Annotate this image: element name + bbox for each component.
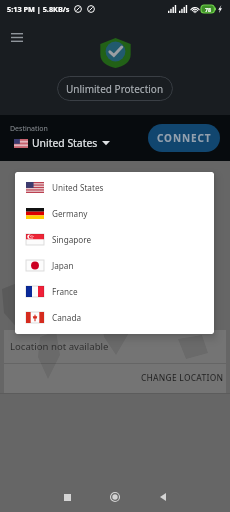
staticText: Japan [52, 260, 74, 271]
staticText: Germany [52, 208, 88, 219]
button[interactable]: CONNECT [148, 124, 220, 152]
staticText: Destination [10, 124, 48, 134]
button[interactable]: Singapore [15, 226, 214, 252]
staticText: CHANGE LOCATION [141, 372, 224, 383]
button[interactable]: Japan [15, 252, 214, 278]
staticText: United States [52, 182, 104, 193]
staticText: Singapore [52, 234, 92, 245]
staticText: 78 [205, 6, 211, 13]
button[interactable]: Home [93, 478, 137, 512]
button[interactable]: Back [141, 478, 185, 512]
staticText: France [52, 286, 78, 297]
staticText: Canada [52, 312, 82, 323]
button[interactable]: France [15, 278, 214, 304]
button[interactable]: Unlimited Protection [57, 76, 173, 101]
staticText: 5:13 PM | 5.8KB/s [7, 4, 70, 14]
staticText: United States [32, 136, 98, 150]
button[interactable]: CHANGE LOCATION [133, 366, 230, 388]
staticText: Location not available [10, 340, 109, 353]
button[interactable]: United States [15, 174, 214, 200]
staticText: Unlimited Protection [66, 82, 164, 96]
button[interactable]: Germany [15, 200, 214, 226]
button[interactable]: Recent apps [45, 478, 89, 512]
button[interactable]: Canada [15, 304, 214, 330]
staticText: CONNECT [157, 131, 212, 145]
button[interactable]: Menu [3, 23, 31, 51]
